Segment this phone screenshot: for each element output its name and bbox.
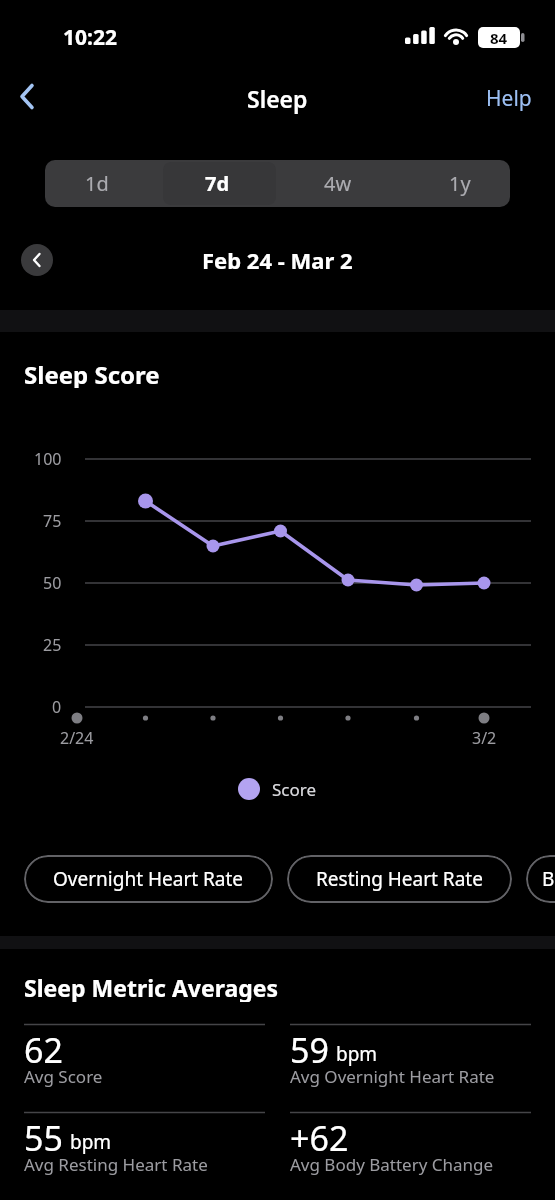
staticText: Avg Overnight Heart Rate — [290, 1065, 495, 1088]
staticText: Resting Heart Rate — [316, 866, 483, 892]
button[interactable]: Overnight Heart Rate — [24, 855, 273, 903]
staticText: bpm — [336, 1041, 378, 1067]
button[interactable]: 4w — [278, 160, 394, 207]
staticText: Avg Resting Heart Rate — [24, 1153, 208, 1176]
staticText: 50 — [43, 572, 62, 594]
button[interactable] — [8, 78, 52, 118]
staticText: Avg Body Battery Change — [290, 1153, 494, 1176]
staticText: Sleep Score — [24, 358, 160, 388]
button[interactable]: 59 — [290, 1024, 531, 1109]
button[interactable]: 62 — [24, 1024, 265, 1109]
button[interactable]: Resting Heart Rate — [287, 855, 512, 903]
button[interactable] — [21, 244, 53, 276]
staticText: 3/2 — [472, 727, 497, 749]
button[interactable]: Help — [470, 82, 545, 114]
staticText: 55 — [24, 1115, 63, 1161]
button[interactable]: 1d — [45, 160, 162, 207]
staticText: 100 — [34, 448, 62, 470]
staticText: 4w — [324, 170, 352, 197]
staticText: Sleep Metric Averages — [24, 972, 279, 1002]
staticText: bpm — [70, 1129, 112, 1155]
staticText: 25 — [43, 634, 62, 656]
staticText: Avg Score — [24, 1065, 103, 1088]
staticText: Sleep — [247, 83, 308, 114]
staticText: 84 — [490, 28, 508, 48]
staticText: 75 — [43, 510, 62, 532]
staticText: +62 — [290, 1115, 349, 1161]
staticText: 10:22 — [63, 23, 117, 52]
button[interactable]: 55 — [24, 1112, 265, 1197]
staticText: Score — [272, 778, 317, 801]
staticText: 62 — [24, 1027, 63, 1073]
button[interactable]: 1y — [394, 160, 510, 207]
staticText: 2/24 — [60, 727, 94, 749]
button[interactable]: Body Battery — [526, 855, 555, 903]
button[interactable]: 7d — [162, 160, 278, 207]
staticText: Feb 24 - Mar 2 — [202, 245, 353, 275]
staticText: 1y — [449, 170, 471, 197]
staticText: 0 — [52, 696, 62, 718]
staticText: Body Battery — [542, 866, 555, 892]
staticText: Help — [486, 84, 532, 113]
button[interactable]: +62 — [290, 1112, 531, 1197]
staticText: 59 — [290, 1027, 329, 1073]
staticText: 1d — [85, 170, 109, 197]
staticText: 7d — [205, 170, 230, 197]
staticText: Overnight Heart Rate — [53, 866, 244, 892]
